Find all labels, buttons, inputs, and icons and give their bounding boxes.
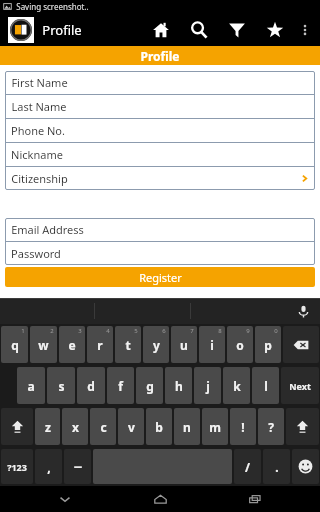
staticText: s bbox=[58, 378, 65, 394]
staticText: b bbox=[155, 419, 163, 435]
staticText: x bbox=[72, 419, 79, 435]
button[interactable]: Nickname bbox=[5, 143, 315, 166]
button[interactable]: a bbox=[17, 367, 45, 404]
staticText: 3 bbox=[78, 327, 82, 335]
button[interactable]: Filter bbox=[218, 13, 256, 46]
button[interactable]: Home bbox=[142, 13, 180, 46]
staticText: Saving screenshot.. bbox=[16, 1, 89, 12]
button[interactable]: First Name bbox=[5, 71, 315, 94]
staticText: ? bbox=[268, 419, 274, 435]
button[interactable]: Search bbox=[180, 13, 218, 46]
button[interactable]: Shift bbox=[286, 408, 319, 445]
staticText: j bbox=[206, 378, 210, 394]
button[interactable]: u bbox=[171, 326, 197, 363]
staticText: i bbox=[210, 337, 214, 353]
button[interactable]: Password bbox=[5, 242, 315, 265]
button[interactable]: q bbox=[1, 326, 28, 363]
staticText: a bbox=[27, 378, 35, 394]
button[interactable]: x bbox=[62, 408, 88, 445]
button[interactable]: Emoji bbox=[292, 449, 319, 484]
staticText: Citizenship bbox=[11, 171, 68, 186]
staticText: u bbox=[180, 337, 188, 353]
button[interactable]: ?123 bbox=[1, 449, 33, 484]
button[interactable]: l bbox=[252, 367, 279, 404]
staticText: 1 bbox=[21, 327, 25, 335]
button[interactable]: b bbox=[146, 408, 172, 445]
button[interactable]: n bbox=[174, 408, 200, 445]
staticText: Profile bbox=[140, 48, 180, 64]
staticText: t bbox=[125, 337, 131, 353]
button[interactable]: v bbox=[118, 408, 144, 445]
button[interactable]: Shift bbox=[1, 408, 33, 445]
staticText: Phone No. bbox=[11, 123, 65, 138]
staticText: 5 bbox=[134, 327, 138, 335]
button[interactable]: Favorites bbox=[256, 13, 294, 46]
button[interactable]: Comma bbox=[35, 449, 62, 484]
staticText: 0 bbox=[274, 327, 278, 335]
button[interactable]: i bbox=[199, 326, 225, 363]
button[interactable]: h bbox=[165, 367, 192, 404]
staticText: n bbox=[183, 419, 191, 435]
staticText: l bbox=[264, 378, 268, 394]
staticText: h bbox=[175, 378, 183, 394]
staticText: Next bbox=[289, 380, 311, 392]
staticText: 4 bbox=[106, 327, 110, 335]
button[interactable]: j bbox=[194, 367, 221, 404]
button[interactable]: e bbox=[59, 326, 85, 363]
button[interactable]: s bbox=[47, 367, 75, 404]
staticText: z bbox=[45, 419, 51, 435]
staticText: / bbox=[245, 459, 250, 475]
staticText: ?123 bbox=[7, 461, 27, 473]
button[interactable]: g bbox=[136, 367, 163, 404]
button[interactable]: c bbox=[90, 408, 116, 445]
button[interactable]: Phone No. bbox=[5, 119, 315, 142]
button[interactable]: y bbox=[143, 326, 169, 363]
button[interactable]: Hide keyboard bbox=[45, 486, 85, 512]
button[interactable]: r bbox=[87, 326, 113, 363]
staticText: 8 bbox=[218, 327, 222, 335]
button[interactable]: Dash bbox=[64, 449, 91, 484]
staticText: Password bbox=[11, 246, 61, 261]
button[interactable]: Period bbox=[263, 449, 290, 484]
button[interactable]: More options bbox=[294, 13, 316, 46]
staticText: , bbox=[47, 459, 51, 475]
staticText: c bbox=[100, 419, 107, 435]
button[interactable]: ? bbox=[258, 408, 284, 445]
staticText: d bbox=[87, 378, 95, 394]
button[interactable]: Home bbox=[140, 486, 180, 512]
staticText: 2 bbox=[50, 327, 54, 335]
button[interactable]: Voice input bbox=[286, 298, 320, 324]
staticText: g bbox=[146, 378, 154, 394]
button[interactable]: t bbox=[115, 326, 141, 363]
button[interactable]: Backspace bbox=[283, 326, 319, 363]
staticText: Last Name bbox=[11, 99, 67, 114]
button[interactable]: Register bbox=[5, 267, 315, 287]
button[interactable]: f bbox=[107, 367, 134, 404]
staticText: y bbox=[153, 337, 160, 353]
button[interactable]: d bbox=[77, 367, 105, 404]
button[interactable]: m bbox=[202, 408, 228, 445]
button[interactable]: z bbox=[35, 408, 60, 445]
button[interactable]: Last Name bbox=[5, 95, 315, 118]
button[interactable]: App icon bbox=[8, 17, 34, 43]
staticText: 7 bbox=[190, 327, 194, 335]
staticText: Profile bbox=[42, 21, 82, 39]
staticText: w bbox=[38, 337, 49, 353]
staticText: f bbox=[118, 378, 123, 394]
button[interactable]: Next bbox=[281, 367, 319, 404]
button[interactable]: ! bbox=[230, 408, 256, 445]
button[interactable]: / bbox=[234, 449, 261, 484]
staticText: m bbox=[209, 419, 221, 435]
staticText: k bbox=[233, 378, 241, 394]
button[interactable]: p bbox=[255, 326, 281, 363]
staticText: ! bbox=[241, 419, 245, 435]
button[interactable]: Citizenship bbox=[5, 167, 315, 190]
staticText: Register bbox=[139, 270, 182, 285]
button[interactable]: o bbox=[227, 326, 253, 363]
button[interactable]: w bbox=[30, 326, 57, 363]
button[interactable]: Recent apps bbox=[235, 486, 275, 512]
button[interactable]: k bbox=[223, 367, 250, 404]
staticText: p bbox=[264, 337, 272, 353]
button[interactable]: Email Address bbox=[5, 218, 315, 241]
